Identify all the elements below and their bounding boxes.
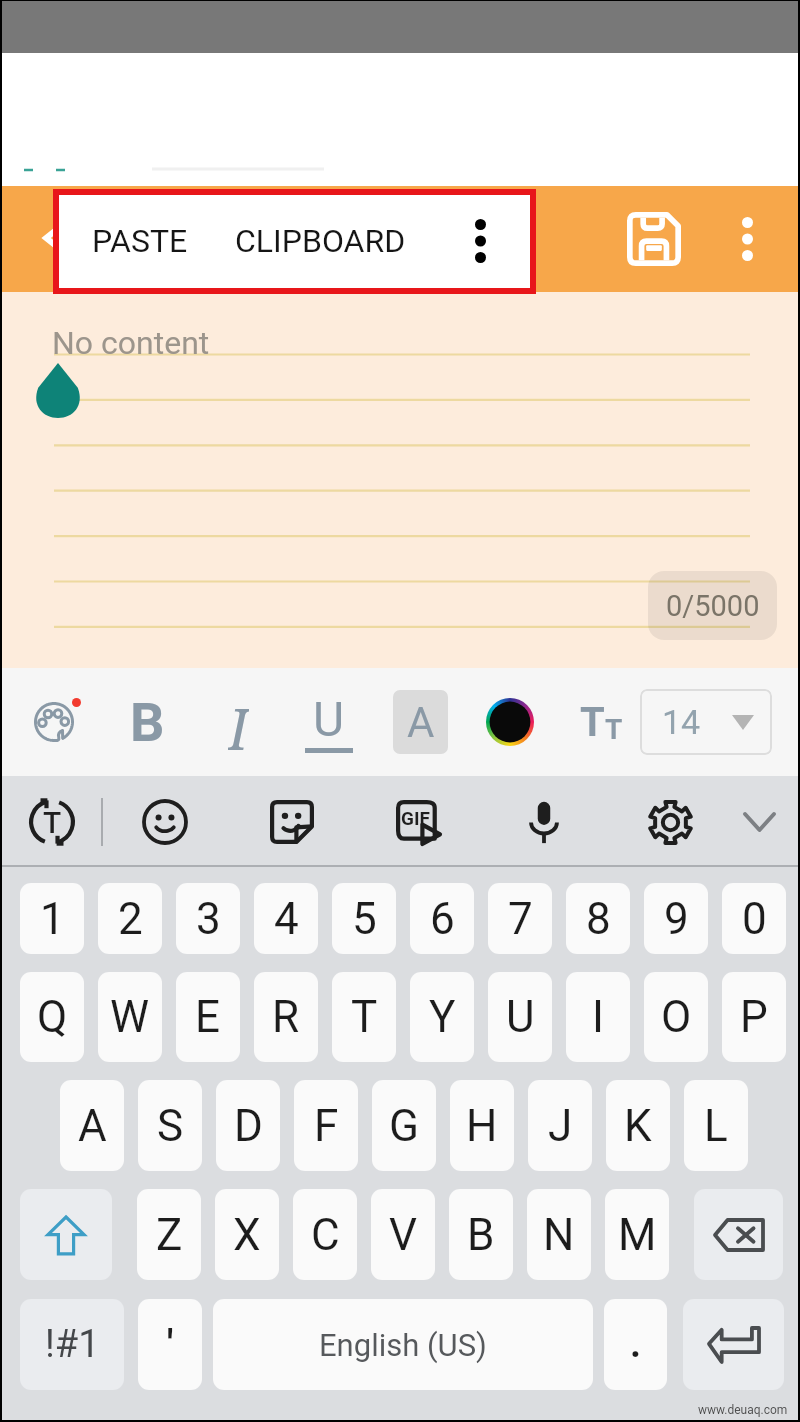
button[interactable]: W [98,972,162,1062]
staticText: 9 [664,893,689,945]
button[interactable]: PASTE [55,189,535,293]
staticText: 5 [352,893,377,945]
button[interactable]: Z [137,1189,201,1280]
staticText: 0 [742,893,767,945]
button[interactable]: 6 [410,883,474,954]
button[interactable]: V [371,1189,435,1280]
staticText: ' [167,1322,174,1367]
staticText: S [157,1100,184,1152]
button[interactable]: A [60,1080,124,1171]
button[interactable]: ' [138,1299,202,1390]
staticText: D [234,1100,263,1152]
button[interactable]: Q [20,972,84,1062]
button[interactable]: English (US) [213,1299,593,1390]
button[interactable]: P [722,972,786,1062]
staticText: T [43,805,62,840]
button[interactable]: R [254,972,318,1062]
staticText: Q [37,991,68,1043]
button[interactable]: Shift [20,1189,112,1280]
button[interactable]: C [293,1189,357,1280]
button[interactable]: More options [451,212,509,270]
staticText: M [618,1209,657,1261]
button[interactable]: PASTE [92,222,188,260]
staticText: 7 [508,893,533,945]
button[interactable]: U [488,972,552,1062]
button[interactable]: 5 [332,883,396,954]
staticText: CLIPBOARD [235,222,406,260]
button[interactable]: !#1 [20,1299,124,1390]
button[interactable]: N [527,1189,591,1280]
button[interactable]: K [606,1080,670,1171]
staticText: P [740,991,768,1043]
button[interactable]: Hide keyboard [727,790,791,854]
staticText: E [195,991,221,1043]
button[interactable]: GIF [386,790,450,854]
button[interactable]: Settings [638,790,702,854]
staticText: L [704,1100,728,1152]
button[interactable]: G [372,1080,436,1171]
button[interactable]: Emoji [133,790,197,854]
staticText: V [389,1209,418,1261]
button[interactable]: L [684,1080,748,1171]
button[interactable]: 9 [644,883,708,954]
staticText: B [467,1209,495,1261]
staticText: Y [429,991,456,1043]
button[interactable]: T [332,972,396,1062]
button[interactable]: 4 [254,883,318,954]
button[interactable]: O [644,972,708,1062]
button[interactable]: Color palette [22,690,86,754]
staticText: F [314,1100,339,1152]
button[interactable]: Voice input [512,790,576,854]
button[interactable]: 2 [98,883,162,954]
staticText: 0/5000 [666,589,760,623]
button[interactable]: B [115,690,179,754]
button[interactable]: Stickers [260,790,324,854]
button[interactable]: 0 [722,883,786,954]
staticText: R [272,991,300,1043]
button[interactable]: CLIPBOARD [235,222,406,260]
staticText: I [592,991,604,1043]
staticText: O [661,991,692,1043]
button[interactable]: Y [410,972,474,1062]
button[interactable]: 7 [488,883,552,954]
button[interactable]: U [297,690,361,754]
staticText: G [389,1100,419,1152]
button[interactable]: F [294,1080,358,1171]
button[interactable]: Translate [20,790,84,854]
staticText: U [313,691,345,747]
button[interactable]: 8 [566,883,630,954]
button[interactable]: E [176,972,240,1062]
button[interactable]: Backspace [694,1189,783,1280]
button[interactable]: M [605,1189,669,1280]
button[interactable]: . [604,1299,667,1390]
staticText: H [466,1100,498,1152]
button[interactable]: Enter [683,1299,784,1390]
button[interactable]: D [216,1080,280,1171]
button[interactable]: A [393,690,448,754]
button[interactable]: X [215,1189,279,1280]
staticText: !#1 [45,1322,100,1367]
staticText: 6 [430,893,455,945]
button[interactable]: I [566,972,630,1062]
button[interactable]: More options [717,209,777,269]
button[interactable]: 1 [20,883,84,954]
button[interactable]: 3 [176,883,240,954]
staticText: X [233,1209,261,1261]
button[interactable]: Save [622,207,686,271]
button[interactable]: I [206,690,270,754]
button[interactable]: B [449,1189,513,1280]
button[interactable]: H [450,1080,514,1171]
button[interactable]: 14 [640,689,772,755]
staticText: English (US) [319,1327,487,1363]
button[interactable]: Text color [480,692,540,752]
staticText: I [228,690,249,754]
staticText: N [543,1209,575,1261]
staticText: 1 [40,893,65,945]
button[interactable]: Text size [569,690,633,754]
staticText: . [630,1322,642,1367]
button[interactable]: S [138,1080,202,1171]
staticText: T [605,713,623,746]
staticText: T [351,991,378,1043]
button[interactable]: J [528,1080,592,1171]
staticText: A [407,698,435,747]
